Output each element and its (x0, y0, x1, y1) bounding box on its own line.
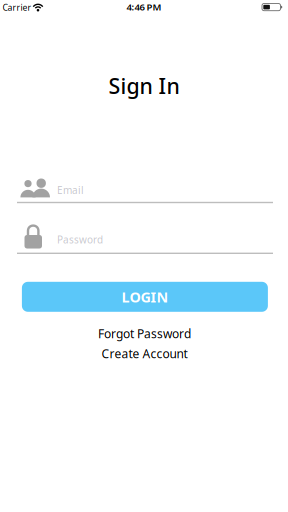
staticText: 4:46 PM (126, 0, 161, 13)
button[interactable]: LOGIN (22, 282, 268, 312)
staticText: Create Account (101, 345, 187, 362)
button[interactable]: Forgot Password (98, 325, 191, 342)
staticText: Email (57, 183, 84, 197)
staticText: LOGIN (121, 287, 168, 307)
staticText: Forgot Password (98, 325, 191, 342)
staticText: Password (57, 233, 103, 246)
button[interactable]: Create Account (101, 345, 187, 362)
staticText: Sign In (108, 71, 179, 100)
staticText: Carrier (2, 1, 31, 13)
